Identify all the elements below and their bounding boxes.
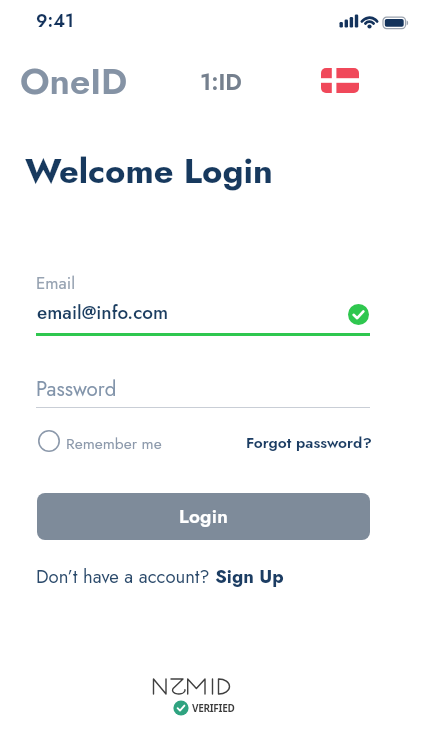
button[interactable]: Password [36, 369, 370, 411]
staticText: 1:ID [200, 65, 242, 98]
button[interactable]: Don’t have a account? Sign Up [36, 563, 284, 590]
staticText: Login [179, 503, 229, 530]
staticText: Email [36, 271, 76, 296]
button[interactable]: Forgot password? [246, 431, 372, 453]
button[interactable]: Remember me [36, 426, 186, 456]
staticText: Remember me [66, 432, 162, 454]
button[interactable]: OneID [20, 55, 128, 108]
button[interactable]: Login [37, 493, 370, 540]
staticText: Welcome Login [25, 146, 273, 196]
staticText: 9:41 [36, 8, 74, 34]
staticText: email@info.com [37, 299, 169, 326]
staticText: Password [36, 374, 117, 404]
staticText: VERIFIED [192, 701, 235, 715]
button[interactable] [321, 68, 359, 93]
button[interactable] [173, 700, 189, 716]
